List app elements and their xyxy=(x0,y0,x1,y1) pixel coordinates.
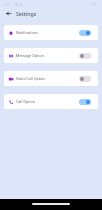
button[interactable]: Toggle off xyxy=(79,76,91,82)
button[interactable]: Call Option xyxy=(4,94,98,109)
button[interactable]: Notifications xyxy=(4,25,98,40)
staticText: Message Option xyxy=(16,53,44,58)
button[interactable]: Back xyxy=(3,8,13,18)
button[interactable]: Toggle off xyxy=(79,53,91,59)
staticText: Settings xyxy=(16,10,37,17)
staticText: Notifications xyxy=(16,30,38,35)
staticText: Call Option xyxy=(16,99,35,104)
button[interactable]: Video Call Option xyxy=(4,71,98,86)
button[interactable]: Toggle on xyxy=(79,30,91,36)
button[interactable]: Toggle on xyxy=(79,99,91,105)
staticText: Video Call Option xyxy=(16,76,46,81)
button[interactable]: Message Option xyxy=(4,48,98,63)
staticText: 3:51 xyxy=(3,2,10,7)
